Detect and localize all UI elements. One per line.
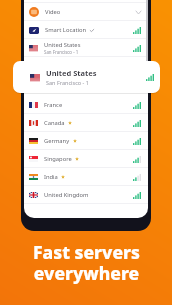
staticText: San Francisco - 1 (46, 79, 89, 86)
button[interactable]: Smart Location (24, 21, 148, 39)
staticText: Smart Location (45, 26, 87, 34)
staticText: India (44, 173, 58, 181)
staticText: United States (44, 77, 81, 85)
staticText: New York - 2 (44, 67, 70, 73)
staticText: United Kingdom (44, 191, 89, 199)
button[interactable]: Video (24, 3, 148, 21)
staticText: Canada (44, 119, 65, 127)
button[interactable]: Germany (24, 132, 148, 150)
button[interactable]: United States (24, 57, 148, 75)
button[interactable]: United Kingdom (24, 186, 148, 204)
staticText: Fast servers everywhere (33, 240, 140, 285)
staticText: United States (44, 41, 81, 49)
button[interactable]: India (24, 168, 148, 186)
button[interactable]: United States (24, 75, 148, 93)
button[interactable]: Singapore (24, 150, 148, 168)
staticText: San Francisco - 1 (44, 49, 79, 55)
staticText: Video (45, 8, 61, 16)
staticText: Singapore (44, 155, 72, 163)
staticText: Germany (44, 137, 70, 145)
staticText: United States (46, 68, 97, 78)
button[interactable]: This week's Top TV and Movies (24, 0, 148, 3)
staticText: France (44, 101, 63, 109)
button[interactable]: France (24, 96, 148, 114)
button[interactable]: Canada (24, 114, 148, 132)
button[interactable]: United States (24, 39, 148, 57)
button[interactable]: United States (13, 61, 160, 93)
